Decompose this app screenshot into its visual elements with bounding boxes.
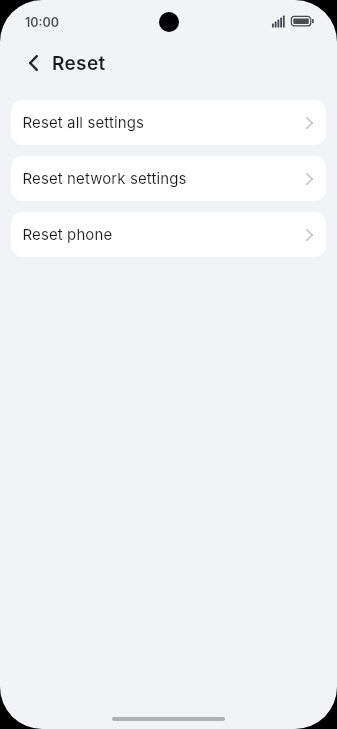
button[interactable]: Reset phone (11, 212, 326, 257)
button[interactable]: Reset all settings (11, 100, 326, 145)
staticText: Reset phone (23, 225, 306, 243)
staticText: Reset (52, 52, 106, 75)
staticText: Reset all settings (23, 113, 306, 131)
button[interactable]: Back (21, 51, 45, 75)
staticText: Reset network settings (23, 169, 306, 187)
staticText: 10:00 (25, 15, 60, 30)
button[interactable]: Reset network settings (11, 156, 326, 201)
